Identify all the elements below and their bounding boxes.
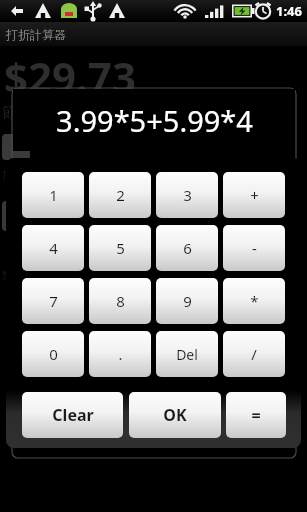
staticText: / xyxy=(251,344,257,364)
button[interactable]: Clear xyxy=(22,392,123,438)
button[interactable]: + xyxy=(223,172,285,218)
button[interactable]: 3 xyxy=(156,172,218,218)
button[interactable]: / xyxy=(223,331,285,377)
staticText: 4 xyxy=(49,238,58,258)
staticText: 拉動 xyxy=(2,168,24,182)
button[interactable]: = xyxy=(226,392,286,438)
button[interactable]: 2 xyxy=(89,172,151,218)
staticText: Clear xyxy=(52,404,94,426)
staticText: . xyxy=(118,344,123,364)
staticText: OK xyxy=(163,404,187,426)
button[interactable]: 7 xyxy=(22,278,84,324)
button[interactable]: 8 xyxy=(89,278,151,324)
staticText: 節省: $24.33 xyxy=(2,101,87,121)
staticText: 3.99*5+5.99*4 xyxy=(56,101,253,140)
staticText: $29.73 xyxy=(4,48,136,105)
button[interactable]: 5 xyxy=(89,225,151,271)
staticText: * xyxy=(250,291,259,311)
button[interactable]: Del xyxy=(156,331,218,377)
staticText: 點選 xyxy=(2,268,24,282)
staticText: 9 xyxy=(183,291,192,311)
button[interactable]: - xyxy=(223,225,285,271)
staticText: 6 xyxy=(183,238,192,258)
staticText: + xyxy=(250,185,259,205)
staticText: 1:46 xyxy=(276,2,302,20)
staticText: 7 xyxy=(49,291,58,311)
staticText: 打折計算器 xyxy=(6,27,66,42)
button[interactable]: 4 xyxy=(22,225,84,271)
staticText: = xyxy=(251,404,261,426)
staticText: 8 xyxy=(116,291,125,311)
button[interactable]: 1 xyxy=(22,172,84,218)
button[interactable]: 9 xyxy=(156,278,218,324)
staticText: 5 xyxy=(116,238,125,258)
button[interactable]: * xyxy=(223,278,285,324)
staticText: 0 xyxy=(49,344,58,364)
staticText: 2 xyxy=(116,185,125,205)
button[interactable]: . xyxy=(89,331,151,377)
staticText: 3 xyxy=(183,185,192,205)
staticText: Del xyxy=(176,345,198,364)
button[interactable]: OK xyxy=(129,392,221,438)
staticText: 1 xyxy=(49,185,58,205)
button[interactable]: 0 xyxy=(22,331,84,377)
staticText: - xyxy=(252,238,257,258)
button[interactable]: 6 xyxy=(156,225,218,271)
